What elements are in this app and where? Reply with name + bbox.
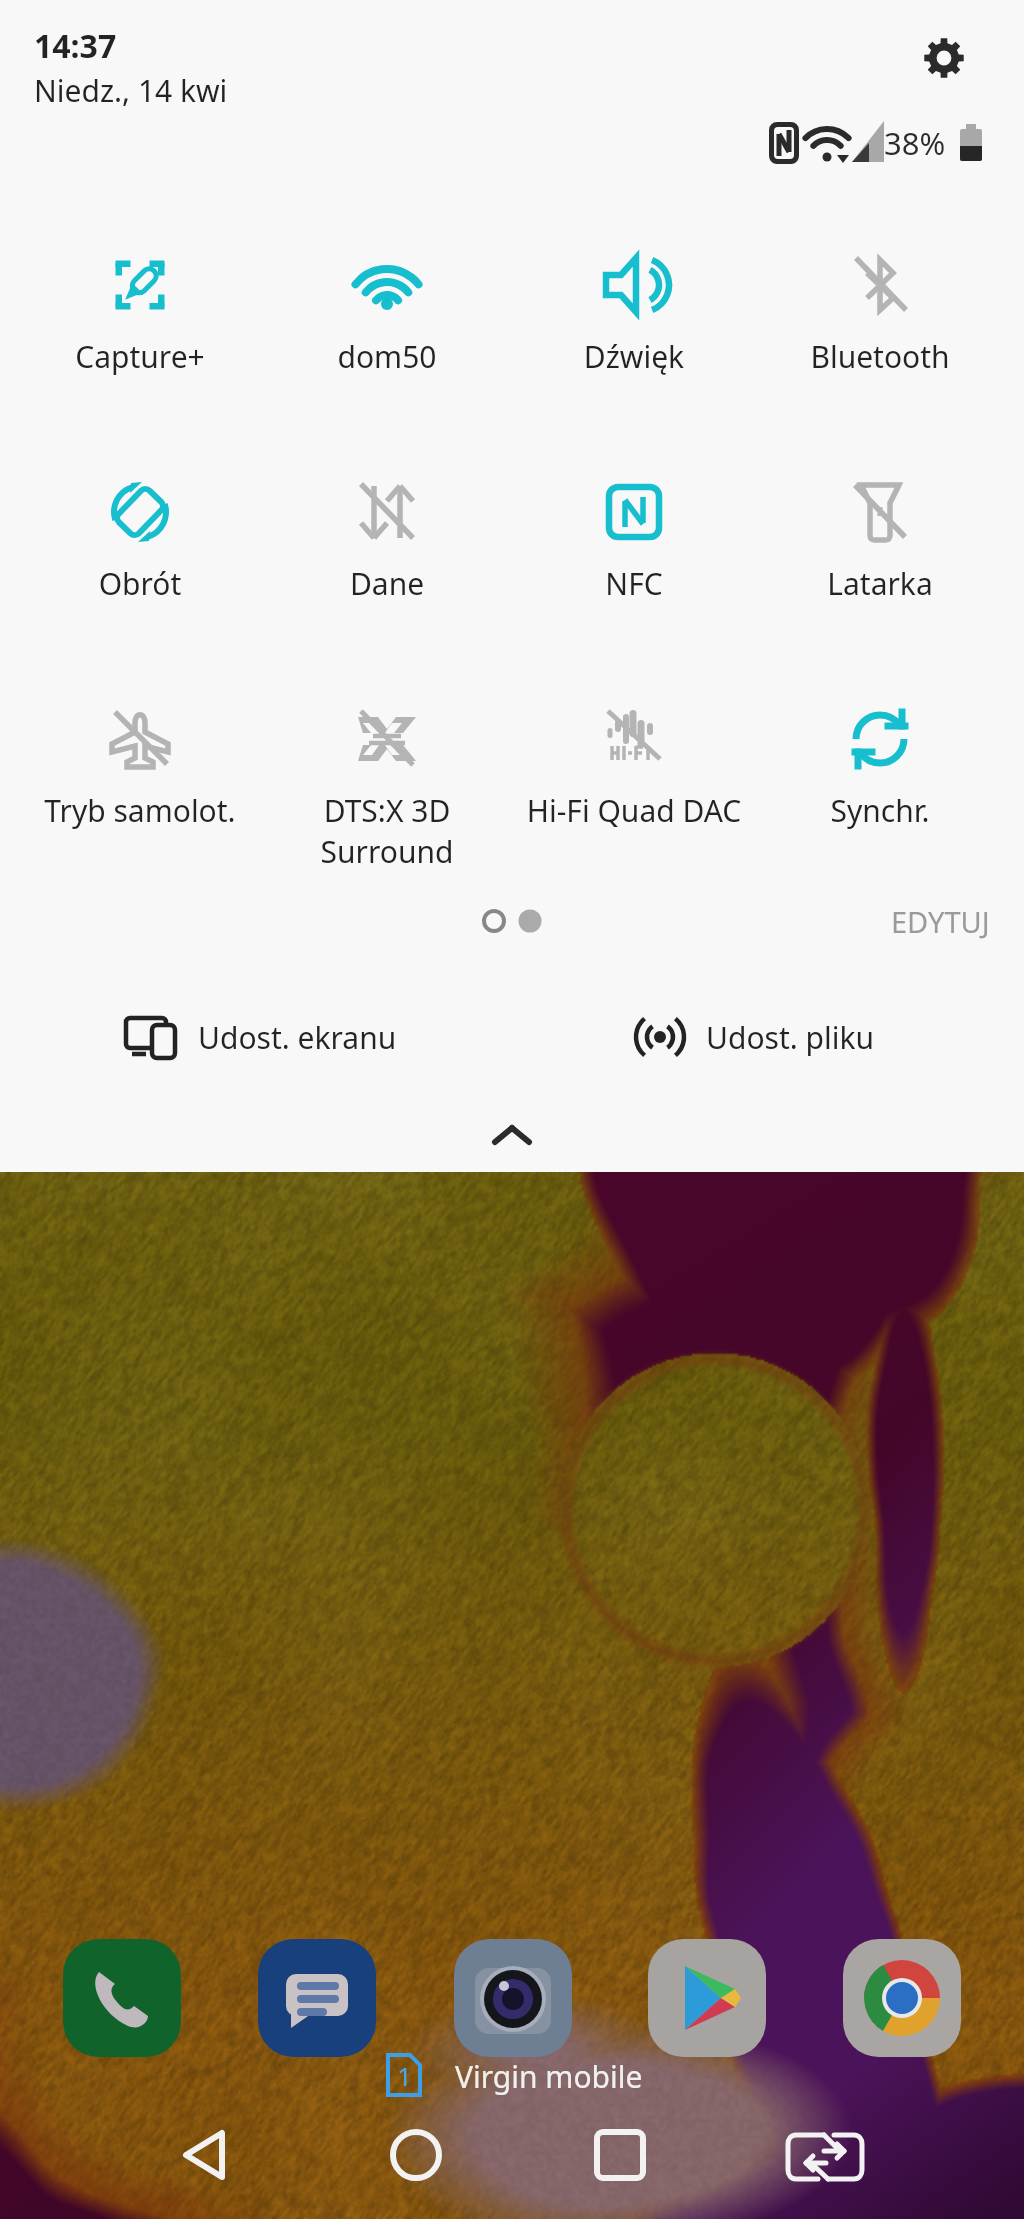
staticText: 38%: [884, 122, 946, 164]
button[interactable]: Dane: [264, 452, 510, 612]
button[interactable]: Home: [370, 2109, 462, 2201]
button[interactable]: Synchr.: [757, 679, 1003, 839]
button[interactable]: Camera: [454, 1939, 572, 2057]
staticText: 1: [397, 2058, 412, 2093]
button[interactable]: Obrót: [17, 452, 263, 612]
button[interactable]: NFC: [511, 452, 757, 612]
button[interactable]: Dźwięk: [511, 225, 757, 385]
button[interactable]: dom50: [264, 225, 510, 385]
staticText: EDYTUJ: [891, 902, 990, 941]
button[interactable]: Hi-Fi Quad DAC: [511, 679, 757, 839]
staticText: Capture+: [17, 336, 263, 377]
staticText: Tryb samolot.: [17, 790, 263, 831]
staticText: Udost. pliku: [706, 1017, 875, 1058]
button[interactable]: Back: [160, 2109, 252, 2201]
button[interactable]: Tryb samolot.: [17, 679, 263, 839]
staticText: Niedz., 14 kwi: [34, 70, 228, 111]
button[interactable]: Bluetooth: [757, 225, 1003, 385]
button[interactable]: Latarka: [757, 452, 1003, 612]
staticText: dom50: [264, 336, 510, 377]
staticText: Bluetooth: [757, 336, 1003, 377]
staticText: Latarka: [757, 563, 1003, 604]
staticText: Hi-Fi Quad DAC: [511, 790, 757, 831]
staticText: NFC: [511, 563, 757, 604]
button[interactable]: EDYTUJ: [820, 896, 990, 946]
button[interactable]: DTS:X 3D Surround: [264, 679, 510, 839]
button[interactable]: Settings: [908, 22, 980, 94]
staticText: Obrót: [17, 563, 263, 604]
button[interactable]: Udost. pliku: [630, 1000, 930, 1074]
button[interactable]: Phone: [63, 1939, 181, 2057]
button[interactable]: Chrome: [843, 1939, 961, 2057]
staticText: Virgin mobile: [455, 2056, 643, 2097]
button[interactable]: Collapse: [472, 1112, 552, 1162]
button[interactable]: Capture+: [17, 225, 263, 385]
staticText: Synchr.: [757, 790, 1003, 831]
button[interactable]: Play Store: [648, 1939, 766, 2057]
button[interactable]: Recents: [574, 2109, 666, 2201]
staticText: 14:37: [34, 24, 117, 68]
button[interactable]: Multi window: [778, 2109, 870, 2201]
staticText: Udost. ekranu: [198, 1017, 397, 1058]
staticText: Dane: [264, 563, 510, 604]
staticText: DTS:X 3D Surround: [264, 790, 510, 872]
staticText: Dźwięk: [511, 336, 757, 377]
button[interactable]: Messages: [258, 1939, 376, 2057]
button[interactable]: Udost. ekranu: [122, 1000, 472, 1074]
